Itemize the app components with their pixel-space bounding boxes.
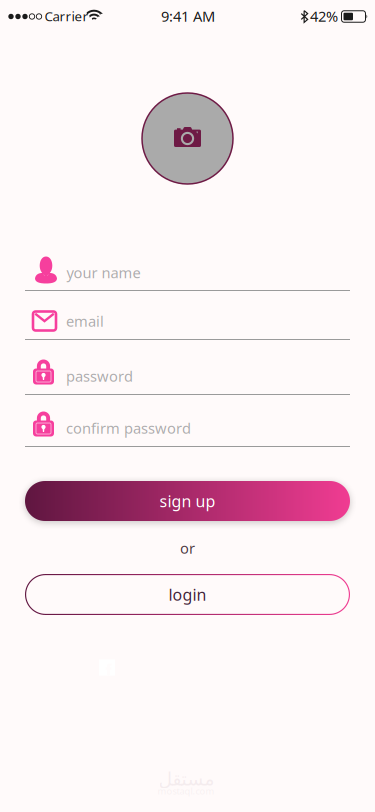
staticText: 42%: [310, 6, 338, 26]
staticText: Carrier: [44, 7, 88, 25]
button[interactable]: password: [25, 354, 350, 394]
button[interactable]: login: [25, 574, 350, 615]
button[interactable]: sign up: [25, 481, 350, 521]
staticText: confirm password: [66, 418, 191, 438]
staticText: 9:41 AM: [161, 6, 215, 26]
staticText: your name: [66, 263, 140, 282]
staticText: مستقل: [158, 768, 214, 790]
staticText: login: [168, 584, 206, 605]
staticText: password: [66, 366, 133, 386]
staticText: or: [180, 538, 195, 558]
button[interactable]: email: [25, 299, 350, 339]
staticText: email: [66, 311, 104, 331]
button[interactable]: confirm password: [25, 406, 350, 446]
button[interactable]: your name: [25, 250, 350, 290]
button[interactable]: Add profile photo: [142, 93, 233, 184]
staticText: sign up: [159, 490, 215, 512]
